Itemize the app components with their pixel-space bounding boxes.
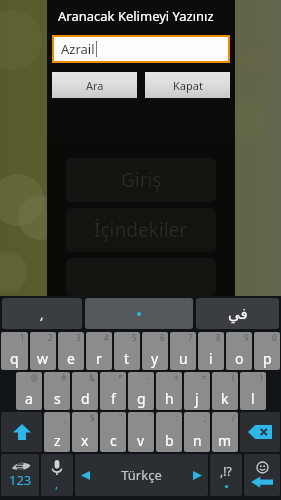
- staticText: ": [119, 412, 123, 423]
- button[interactable]: Voice input: [41, 454, 73, 496]
- button[interactable]: 5: [114, 332, 140, 370]
- staticText: ,: [40, 305, 44, 323]
- staticText: t: [124, 349, 130, 368]
- button[interactable]: Türkçe: [75, 454, 208, 496]
- staticText: KABIR ALEMI: [54, 28, 227, 61]
- button[interactable]: _: [44, 412, 70, 452]
- staticText: 1: [20, 332, 25, 343]
- button[interactable]: *: [100, 372, 126, 410]
- button[interactable]: 2: [30, 332, 56, 370]
- staticText: Kapat: [173, 78, 203, 93]
- staticText: @: [31, 372, 39, 383]
- staticText: Aranacak Kelimeyi Yazınız: [58, 7, 235, 25]
- staticText: s: [54, 389, 61, 408]
- button[interactable]: 8: [198, 332, 224, 370]
- staticText: d: [81, 389, 90, 408]
- staticText: o: [235, 349, 244, 368]
- staticText: 123: [9, 471, 32, 489]
- staticText: 4: [104, 332, 109, 343]
- staticText: Giriş: [121, 167, 162, 193]
- button[interactable]: :: [156, 412, 182, 452]
- staticText: 8: [216, 332, 221, 343]
- button[interactable]: =: [184, 372, 210, 410]
- button[interactable]: [85, 298, 193, 329]
- button[interactable]: ": [100, 412, 126, 452]
- staticText: e: [67, 349, 75, 368]
- staticText: v: [137, 431, 145, 450]
- staticText: İçindekiler: [94, 217, 188, 243]
- button[interactable]: $: [72, 412, 98, 452]
- staticText: n: [193, 431, 202, 450]
- button[interactable]: 7: [170, 332, 196, 370]
- button[interactable]: Enter: [244, 454, 280, 496]
- staticText: _: [63, 412, 67, 423]
- staticText: 6: [160, 332, 165, 343]
- staticText: *: [118, 372, 123, 383]
- button[interactable]: +: [156, 372, 182, 410]
- staticText: g: [137, 389, 146, 408]
- button[interactable]: 1: [1, 332, 28, 370]
- staticText: p: [263, 349, 272, 368]
- staticText: ,: [55, 475, 59, 491]
- staticText: Türkçe: [90, 466, 193, 484]
- button[interactable]: ,: [2, 298, 82, 329]
- staticText: r: [96, 349, 102, 368]
- button[interactable]: 6: [142, 332, 168, 370]
- button[interactable]: @: [16, 372, 42, 410]
- staticText: 7: [188, 332, 193, 343]
- button[interactable]: Azrail: [54, 37, 228, 61]
- button[interactable]: (: [212, 372, 238, 410]
- staticText: i: [209, 349, 213, 368]
- staticText: l: [251, 389, 255, 408]
- staticText: x: [81, 431, 89, 450]
- staticText: h: [165, 389, 174, 408]
- button[interactable]: Shift: [1, 412, 42, 452]
- button[interactable]: Kapat: [145, 72, 230, 98]
- button[interactable]: /: [212, 412, 238, 452]
- staticText: u: [179, 349, 188, 368]
- button[interactable]: #: [44, 372, 70, 410]
- button[interactable]: 3: [58, 332, 84, 370]
- staticText: -: [148, 372, 151, 383]
- staticText: f: [111, 389, 116, 408]
- staticText: q: [10, 349, 19, 368]
- button[interactable]: ): [240, 372, 266, 410]
- staticText: y: [151, 349, 159, 368]
- button[interactable]: 9: [226, 332, 252, 370]
- staticText: (: [232, 372, 235, 383]
- staticText: b: [165, 431, 174, 450]
- staticText: ;: [204, 412, 207, 423]
- staticText: في: [228, 305, 248, 322]
- button[interactable]: İçindekiler: [66, 208, 216, 252]
- staticText: ,!?: [220, 463, 232, 479]
- button[interactable]: -: [128, 372, 154, 410]
- staticText: /: [232, 412, 235, 423]
- button[interactable]: Ara: [52, 72, 137, 98]
- staticText: ': [149, 412, 151, 423]
- button[interactable]: Backspace: [240, 412, 280, 452]
- staticText: 3: [76, 332, 81, 343]
- button[interactable]: 4: [86, 332, 112, 370]
- button[interactable]: ,!?: [210, 454, 242, 496]
- staticText: c: [110, 431, 117, 450]
- staticText: :: [176, 412, 179, 423]
- staticText: #: [61, 372, 67, 383]
- staticText: m: [218, 431, 232, 450]
- button[interactable]: ;: [184, 412, 210, 452]
- button[interactable]: &: [72, 372, 98, 410]
- staticText: &: [89, 372, 95, 383]
- staticText: +: [174, 372, 179, 383]
- staticText: j: [195, 389, 199, 408]
- staticText: ): [260, 372, 263, 383]
- staticText: 9: [244, 332, 249, 343]
- button[interactable]: Symbols 123: [1, 454, 39, 496]
- staticText: $: [90, 412, 95, 423]
- button[interactable]: ': [128, 412, 154, 452]
- button[interactable]: 0: [254, 332, 280, 370]
- staticText: w: [37, 349, 49, 368]
- button[interactable]: في: [196, 298, 279, 329]
- staticText: 2: [48, 332, 53, 343]
- staticText: Azrail: [61, 40, 95, 58]
